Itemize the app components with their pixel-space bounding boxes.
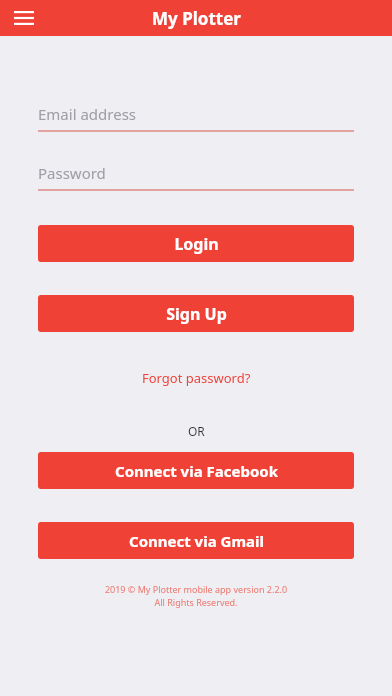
- staticText: Connect via Facebook: [115, 461, 278, 481]
- staticText: Sign Up: [166, 303, 227, 325]
- staticText: Forgot password?: [142, 369, 251, 387]
- button[interactable]: Login: [38, 225, 354, 262]
- button[interactable]: Open navigation menu: [6, 0, 42, 36]
- staticText: Login: [174, 233, 219, 255]
- button[interactable]: Connect via Gmail: [38, 522, 354, 559]
- button[interactable]: Connect via Facebook: [38, 452, 354, 489]
- button[interactable]: Password: [38, 159, 354, 187]
- staticText: Email address: [38, 104, 137, 124]
- staticText: Connect via Gmail: [129, 531, 264, 551]
- staticText: All Rights Reserved.: [38, 596, 354, 608]
- staticText: Password: [38, 163, 106, 183]
- button[interactable]: Sign Up: [38, 295, 354, 332]
- button[interactable]: Forgot password?: [136, 366, 257, 390]
- staticText: 2019 © My Plotter mobile app version 2.2…: [38, 583, 354, 595]
- staticText: My Plotter: [152, 7, 241, 30]
- staticText: OR: [188, 423, 205, 439]
- button[interactable]: Email address: [38, 100, 354, 128]
